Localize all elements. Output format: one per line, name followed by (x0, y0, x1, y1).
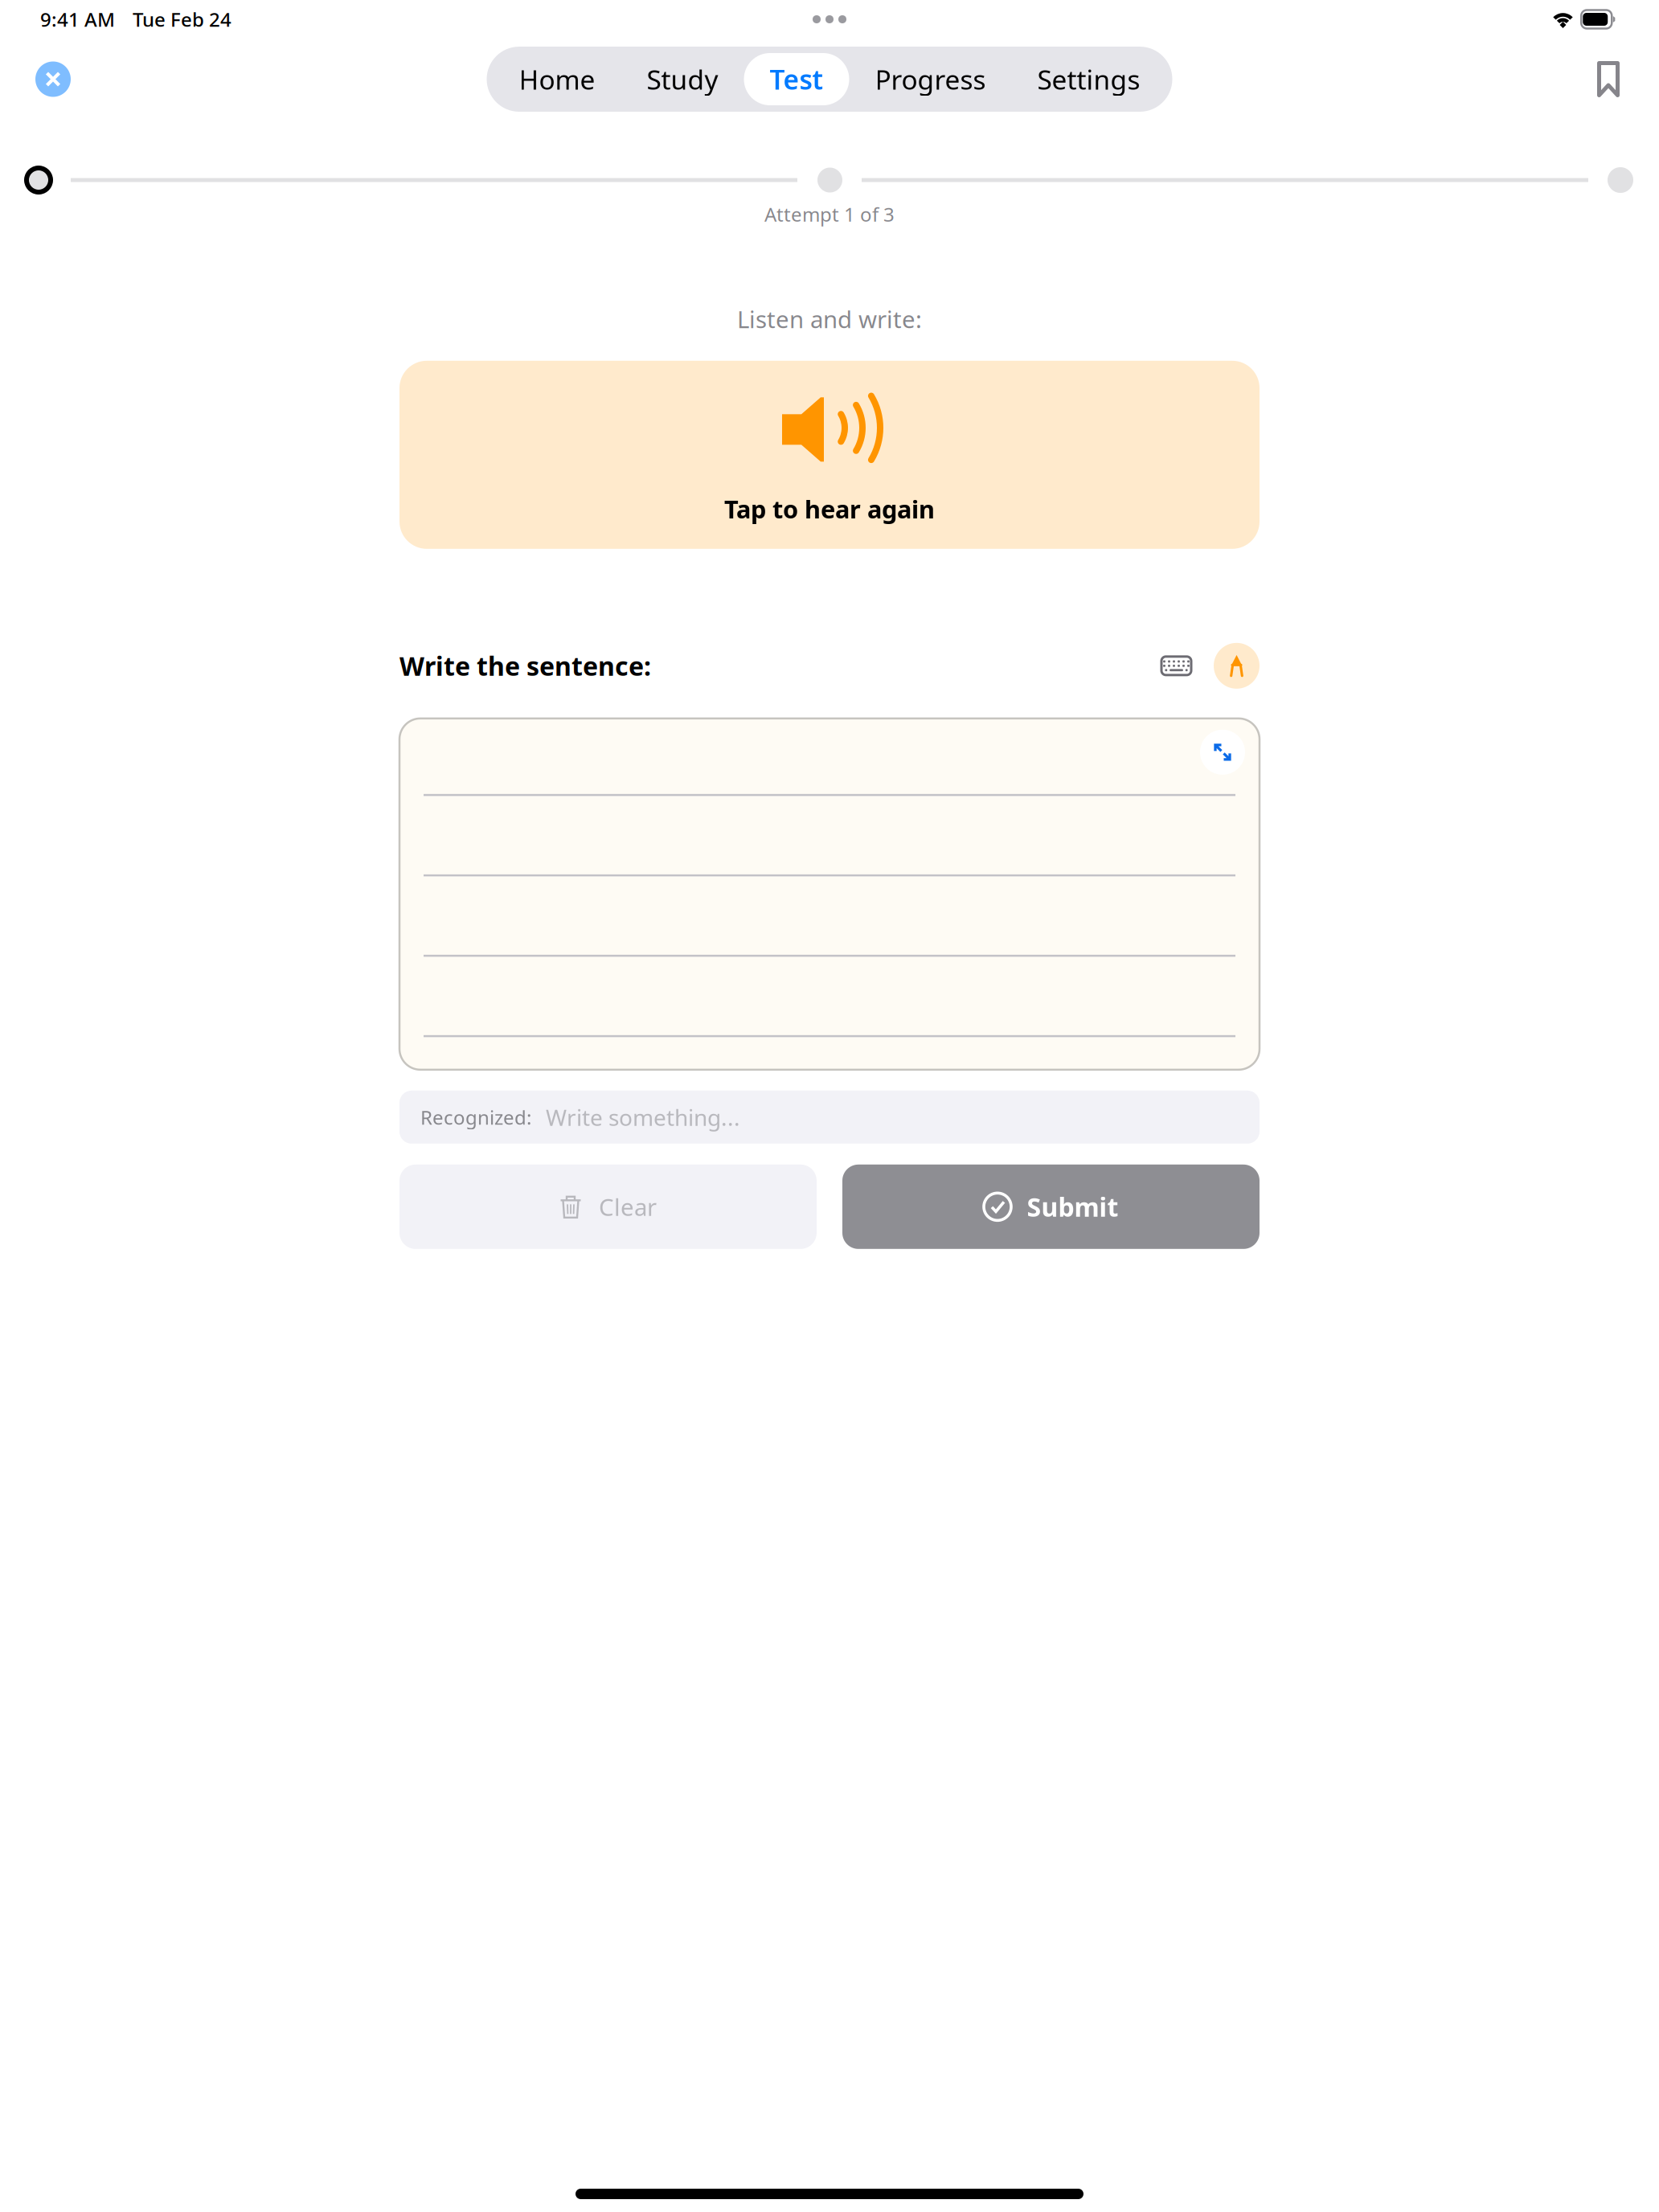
staticText: Attempt 1 of 3 (764, 201, 895, 227)
button[interactable]: Test (744, 53, 849, 105)
staticText: Settings (1037, 61, 1140, 97)
button[interactable]: Settings (1012, 53, 1166, 105)
button[interactable]: Study (621, 53, 744, 105)
button[interactable]: Tap to hear again (399, 361, 1260, 549)
button[interactable]: Submit (842, 1165, 1260, 1249)
staticText: 9:41 AM (40, 7, 115, 32)
staticText: Clear (599, 1191, 657, 1222)
staticText: Study (647, 61, 718, 97)
staticText: Progress (875, 61, 986, 97)
button[interactable]: Bookmark (1597, 61, 1620, 97)
staticText: Write something... (546, 1102, 740, 1132)
staticText: Tue Feb 24 (133, 7, 231, 32)
staticText: Recognized: (420, 1104, 531, 1130)
staticText: Listen and write: (737, 303, 922, 335)
staticText: Test (770, 61, 823, 97)
button[interactable]: Close (35, 61, 71, 97)
staticText: Submit (1027, 1190, 1118, 1224)
button[interactable]: Expand writing area (1200, 730, 1245, 775)
button[interactable]: Progress (849, 53, 1012, 105)
staticText: Tap to hear again (724, 493, 935, 525)
button[interactable]: Home (493, 53, 621, 105)
button[interactable]: Clear (399, 1165, 817, 1249)
button[interactable]: Keyboard input (1161, 657, 1191, 675)
button[interactable]: Handwriting input (1214, 643, 1260, 689)
staticText: Write the sentence: (399, 649, 651, 683)
staticText: Home (519, 61, 595, 97)
